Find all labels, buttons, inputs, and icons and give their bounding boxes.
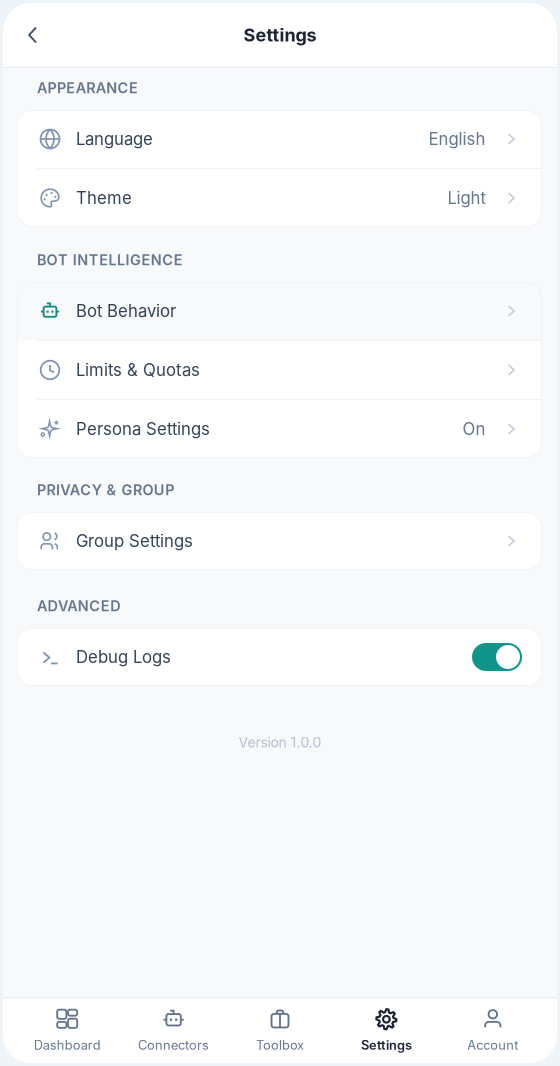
staticText: Debug Logs <box>76 647 171 667</box>
staticText: Version 1.0.0 <box>238 734 321 751</box>
staticText: Persona Settings <box>76 419 210 439</box>
staticText: Limits & Quotas <box>76 360 200 380</box>
staticText: BOT INTELLIGENCE <box>37 251 183 269</box>
staticText: Theme <box>76 188 132 208</box>
button[interactable]: Limits & Quotas <box>17 341 542 399</box>
staticText: ADVANCED <box>37 597 120 615</box>
button[interactable]: Connectors <box>120 996 227 1065</box>
staticText: Account <box>467 1037 518 1053</box>
button[interactable]: Persona Settings <box>17 400 542 458</box>
staticText: Settings <box>361 1037 412 1053</box>
button[interactable]: Account <box>440 996 546 1065</box>
button[interactable]: Bot Behavior <box>17 282 542 340</box>
staticText: Language <box>76 129 153 149</box>
button[interactable]: Debug Logs <box>17 628 542 686</box>
staticText: Light <box>447 188 485 208</box>
staticText: Connectors <box>138 1037 209 1053</box>
staticText: English <box>428 129 485 149</box>
staticText: APPEARANCE <box>37 79 138 97</box>
staticText: Settings <box>243 24 316 46</box>
button[interactable]: Toolbox <box>227 996 333 1065</box>
staticText: Bot Behavior <box>76 301 176 321</box>
button[interactable]: Settings <box>333 996 440 1065</box>
button[interactable]: Theme <box>17 169 542 227</box>
staticText: Group Settings <box>76 531 193 551</box>
staticText: Toolbox <box>256 1037 304 1053</box>
button[interactable]: Language <box>17 110 542 168</box>
button[interactable]: Dashboard <box>14 996 120 1065</box>
staticText: PRIVACY & GROUP <box>37 481 174 499</box>
staticText: Dashboard <box>34 1037 101 1053</box>
button[interactable]: Back <box>3 12 62 57</box>
button[interactable]: Group Settings <box>17 512 542 570</box>
staticText: On <box>462 419 485 439</box>
